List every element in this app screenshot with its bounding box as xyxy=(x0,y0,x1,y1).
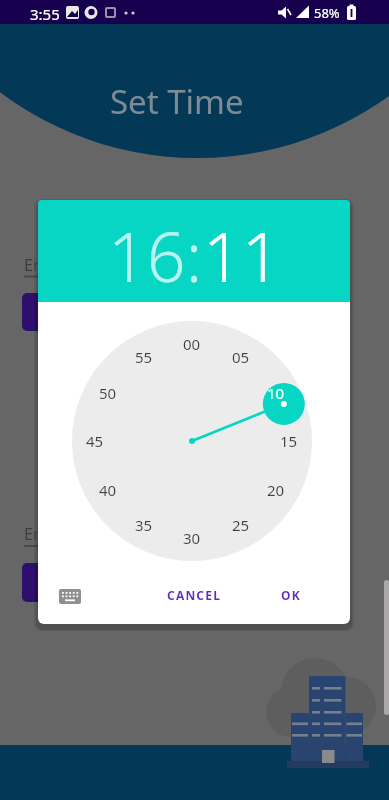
staticText: 58% xyxy=(314,4,340,22)
staticText: En xyxy=(24,254,43,272)
staticText: 00 xyxy=(183,334,201,354)
staticText: 05 xyxy=(232,347,250,367)
staticText: 11 xyxy=(203,209,281,302)
staticText: 25 xyxy=(232,515,250,535)
staticText: CANCEL xyxy=(167,587,222,603)
staticText: 30 xyxy=(183,528,201,548)
staticText: 20 xyxy=(267,480,285,500)
staticText: 3:55 xyxy=(30,4,60,22)
staticText: 16: xyxy=(108,209,203,302)
staticText: 55 xyxy=(135,347,153,367)
staticText: 35 xyxy=(135,515,153,535)
staticText: 40 xyxy=(99,480,117,500)
staticText: 10 xyxy=(267,383,285,403)
button[interactable] xyxy=(51,581,89,611)
staticText: En xyxy=(24,523,43,541)
button[interactable]: OK xyxy=(267,578,315,612)
staticText: Set Time xyxy=(110,79,244,119)
button[interactable]: CANCEL xyxy=(156,578,232,612)
staticText: 15 xyxy=(280,431,298,451)
staticText: 50 xyxy=(99,383,117,403)
staticText: 45 xyxy=(86,431,104,451)
staticText: OK xyxy=(281,587,301,603)
